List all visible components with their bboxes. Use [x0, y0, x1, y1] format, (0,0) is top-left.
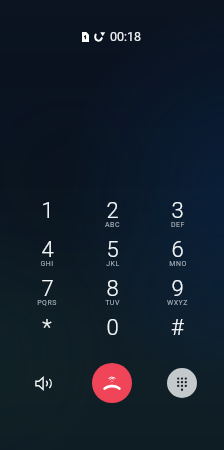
button[interactable]: #: [145, 314, 210, 353]
staticText: JKL: [106, 260, 120, 268]
staticText: 4: [41, 237, 54, 263]
button[interactable]: End call: [92, 363, 132, 403]
staticText: #: [171, 315, 184, 341]
staticText: 2: [106, 198, 119, 224]
staticText: 1: [41, 198, 54, 224]
staticText: 8: [106, 276, 119, 302]
button[interactable]: 1: [14, 197, 80, 236]
staticText: 5: [106, 237, 119, 263]
staticText: 00:18: [110, 29, 142, 44]
button[interactable]: 7: [14, 275, 80, 314]
staticText: 7: [41, 276, 54, 302]
button[interactable]: 3: [145, 197, 210, 236]
button[interactable]: 5: [80, 236, 145, 275]
staticText: WXYZ: [167, 299, 188, 307]
button[interactable]: 0: [80, 314, 145, 353]
staticText: DEF: [171, 221, 185, 229]
staticText: *: [42, 315, 52, 341]
staticText: 0: [106, 315, 119, 341]
staticText: ABC: [105, 221, 120, 229]
button[interactable]: Keypad: [167, 368, 197, 398]
button[interactable]: 8: [80, 275, 145, 314]
button[interactable]: 2: [80, 197, 145, 236]
button[interactable]: 6: [145, 236, 210, 275]
staticText: PQRS: [37, 299, 57, 307]
button[interactable]: *: [14, 314, 80, 353]
button[interactable]: 4: [14, 236, 80, 275]
button[interactable]: Speaker: [25, 366, 60, 401]
staticText: 3: [171, 198, 184, 224]
button[interactable]: 9: [145, 275, 210, 314]
staticText: TUV: [105, 299, 120, 307]
staticText: GHI: [40, 260, 54, 268]
staticText: MNO: [169, 260, 187, 268]
staticText: 9: [171, 276, 184, 302]
staticText: 6: [171, 237, 184, 263]
